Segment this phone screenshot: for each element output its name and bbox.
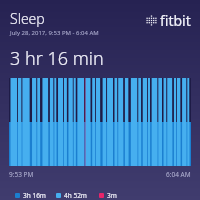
button[interactable]: Fitbit xyxy=(146,11,191,30)
staticText: Sleep xyxy=(10,9,45,28)
button[interactable]: Sleep stages chart xyxy=(9,78,191,166)
staticText: 3h 16m xyxy=(23,191,46,200)
staticText: July 28, 2017, 9:53 PM - 6:04 AM xyxy=(10,29,99,37)
staticText: fitbit xyxy=(160,11,191,30)
staticText: 6:04 AM xyxy=(166,170,191,179)
button[interactable]: 3m xyxy=(99,191,128,200)
staticText: 3 hr 16 min xyxy=(10,46,104,71)
staticText: 9:53 PM xyxy=(9,170,34,179)
button[interactable]: 3h 16m xyxy=(15,191,46,200)
staticText: 3m xyxy=(107,191,117,200)
staticText: 4h 52m xyxy=(64,191,87,200)
button[interactable]: 4h 52m xyxy=(56,191,89,200)
